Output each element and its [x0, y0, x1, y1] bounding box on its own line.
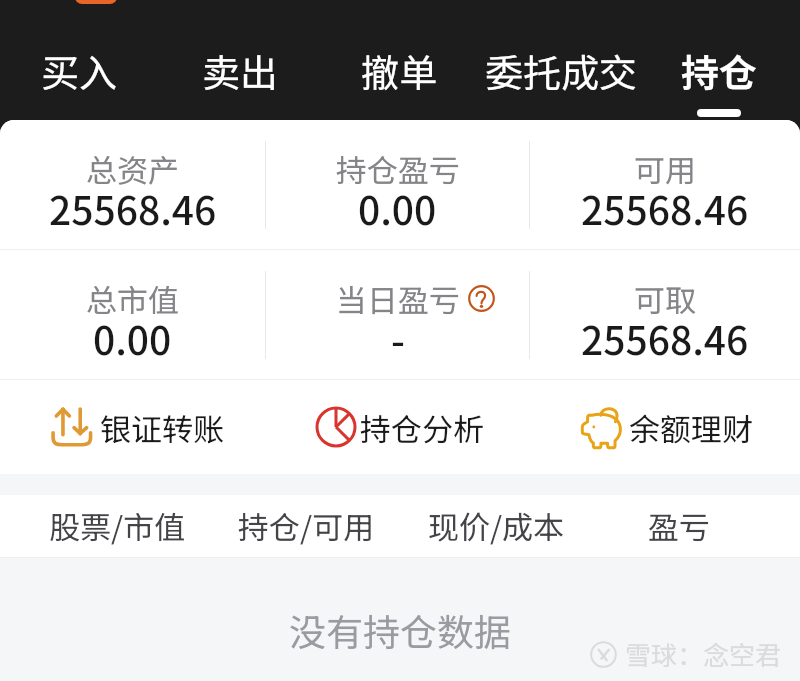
staticText: - — [391, 310, 405, 366]
other: 余额理财 — [580, 404, 626, 450]
staticText: 持仓 — [681, 43, 758, 98]
button[interactable]: 现价/成本 — [414, 495, 579, 557]
staticText: 没有持仓数据 — [289, 603, 511, 657]
staticText: 可取 — [634, 276, 696, 321]
button[interactable]: 银证转账 — [0, 380, 265, 474]
staticText: 0.00 — [358, 180, 437, 236]
staticText: 0.00 — [93, 310, 172, 366]
button[interactable]: 卖出 — [188, 0, 292, 120]
staticText: 现价/成本 — [428, 503, 565, 548]
other: 银证转账 — [51, 404, 97, 450]
button[interactable]: 盈亏 — [634, 495, 724, 557]
button[interactable]: 余额理财 — [530, 380, 800, 474]
staticText: 可用 — [634, 146, 696, 191]
button[interactable]: 买入 — [27, 0, 131, 120]
staticText: 持仓盈亏 — [336, 146, 460, 191]
staticText: 25568.46 — [581, 180, 749, 236]
button[interactable]: 撤单 — [347, 0, 451, 120]
staticText: 卖出 — [202, 43, 279, 98]
staticText: 盈亏 — [648, 503, 710, 548]
button[interactable]: 持仓分析 — [265, 380, 530, 474]
button[interactable]: 持仓/可用 — [224, 495, 389, 557]
staticText: 撤单 — [361, 43, 438, 98]
staticText: 25568.46 — [49, 180, 217, 236]
staticText: 买入 — [41, 43, 118, 98]
staticText: 持仓/可用 — [238, 503, 375, 548]
staticText: 委托成交 — [485, 43, 638, 98]
button[interactable]: 委托成交 — [481, 0, 641, 120]
staticText: 持仓分析 — [360, 405, 484, 450]
staticText: 银证转账 — [100, 405, 224, 450]
button[interactable]: 说明 — [468, 285, 495, 312]
staticText: 总市值 — [86, 276, 179, 321]
button[interactable]: 股票/市值 — [35, 495, 200, 557]
button[interactable]: 持仓 — [667, 0, 771, 120]
staticText: 余额理财 — [629, 405, 753, 450]
staticText: 当日盈亏 — [336, 276, 460, 321]
staticText: 25568.46 — [581, 310, 749, 366]
other: 持仓分析 — [315, 406, 357, 448]
staticText: 雪球：念空君 — [625, 635, 782, 673]
staticText: 总资产 — [86, 146, 179, 191]
staticText: 股票/市值 — [49, 503, 186, 548]
